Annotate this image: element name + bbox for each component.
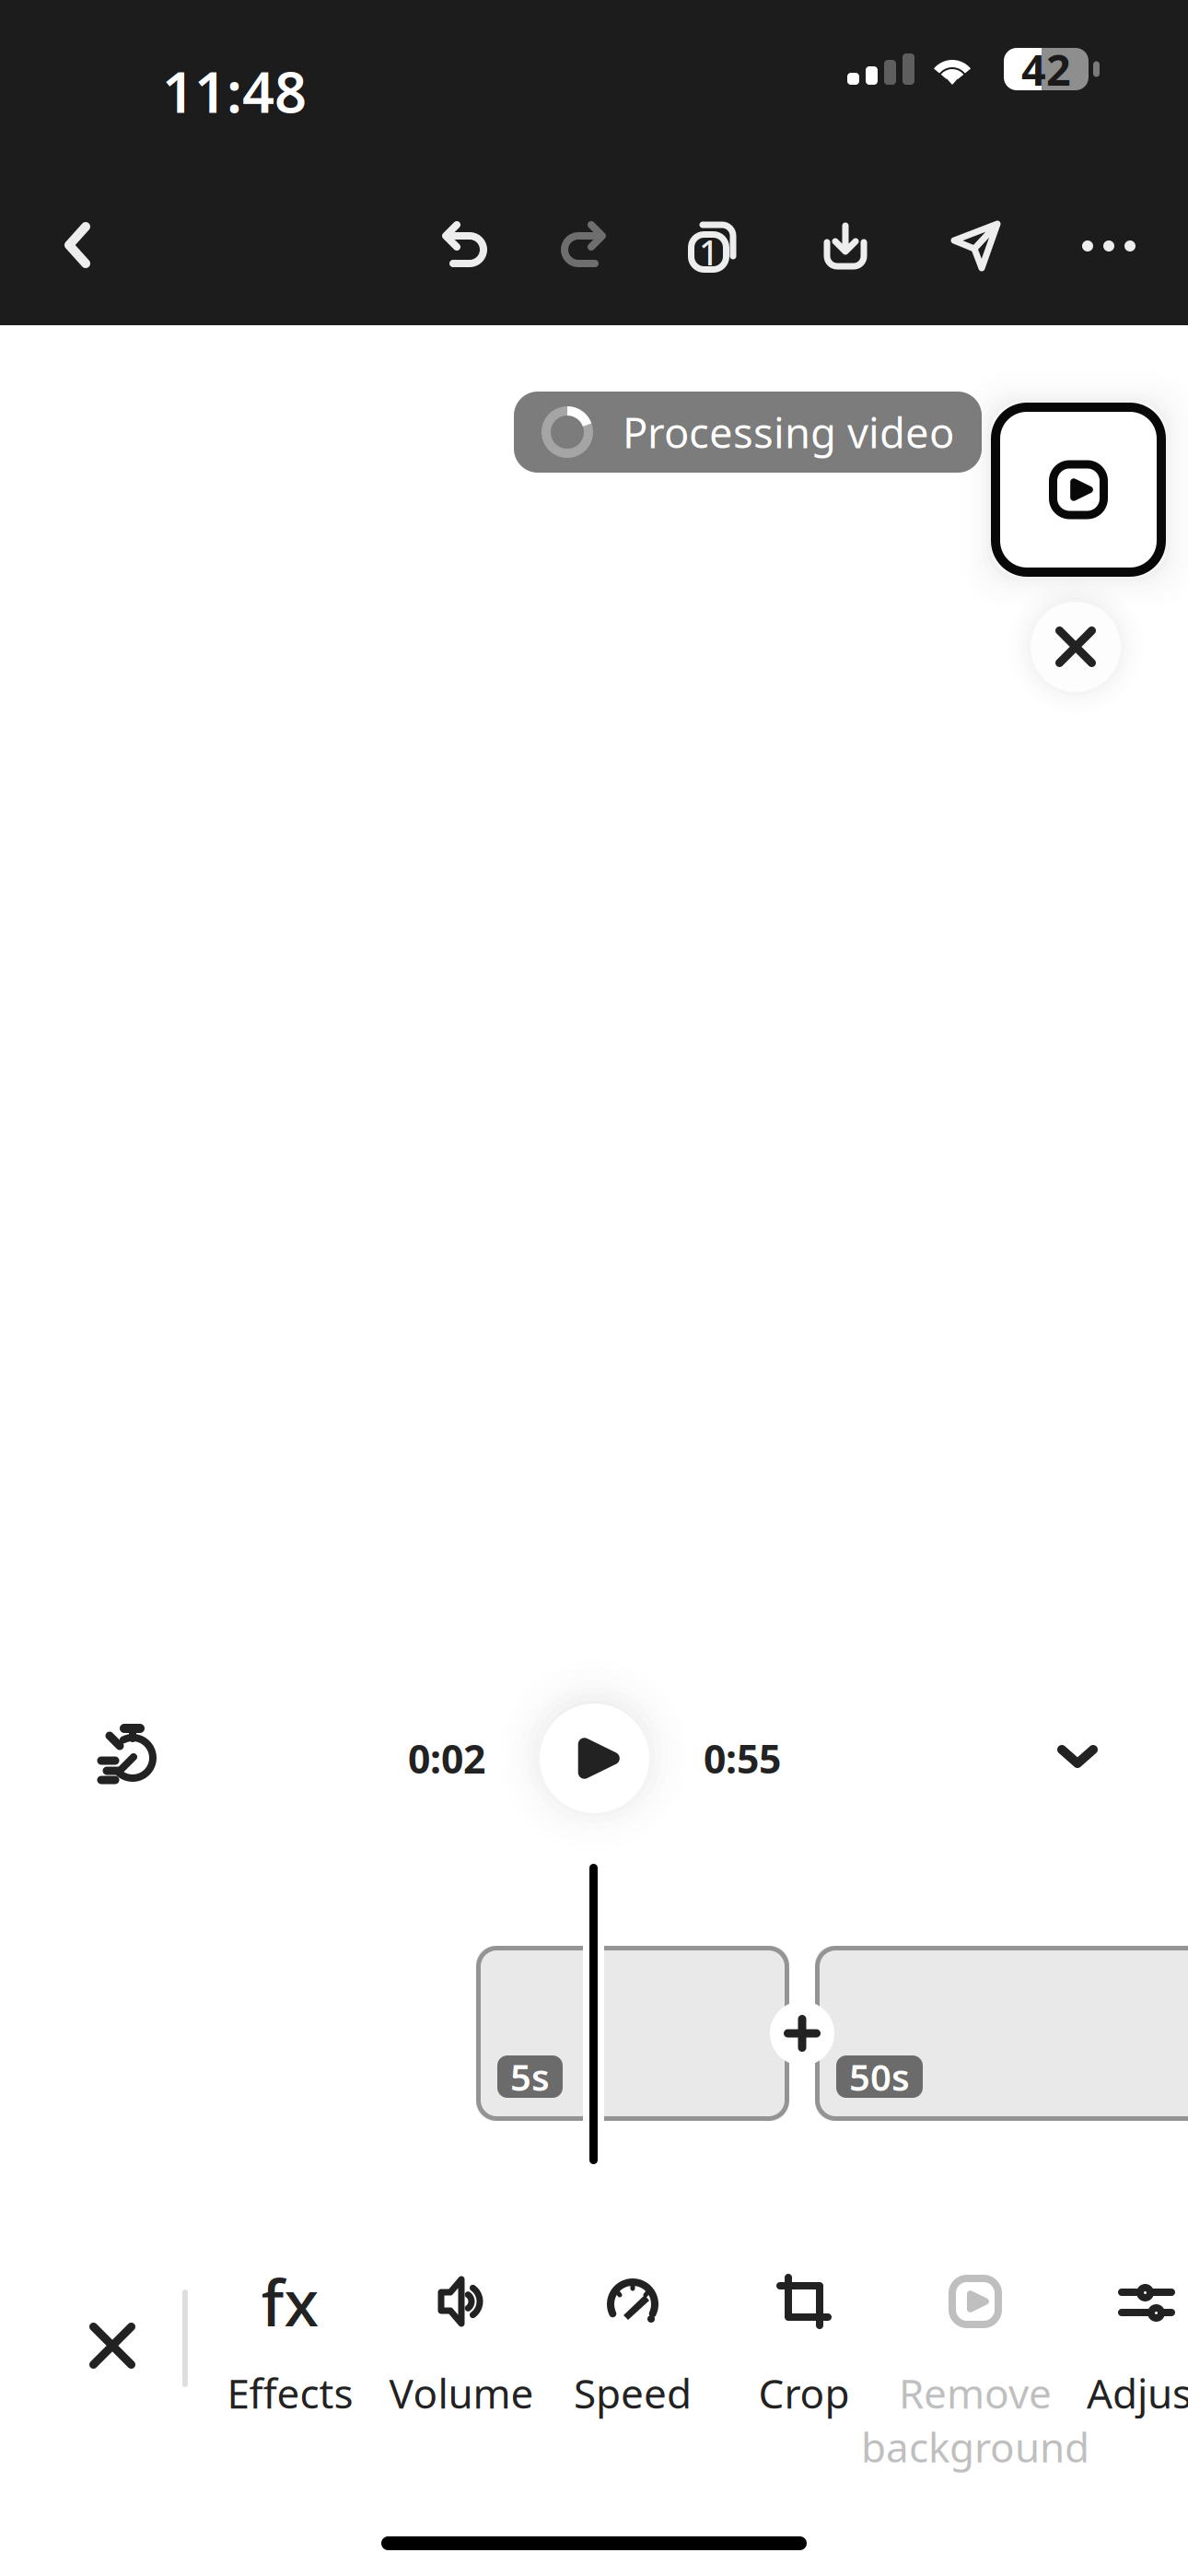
button[interactable]: More <box>1059 196 1159 296</box>
staticText: fx <box>261 2259 319 2344</box>
staticText: Adjust <box>1087 2366 1188 2420</box>
staticText: 1 <box>699 229 718 275</box>
staticText: Crop <box>758 2366 850 2420</box>
button[interactable]: Back <box>28 194 129 296</box>
button[interactable]: Adjust <box>1061 2272 1188 2465</box>
button[interactable]: Pages <box>662 196 762 296</box>
button[interactable]: Play <box>540 1704 649 1813</box>
staticText: 42 <box>1021 41 1071 98</box>
staticText: 0:02 <box>408 1732 485 1784</box>
staticText: 5s <box>510 2052 550 2101</box>
button[interactable]: Share <box>926 196 1026 296</box>
button[interactable]: Video clip <box>991 403 1166 577</box>
staticText: Effects <box>227 2366 353 2420</box>
button[interactable]: Download <box>796 196 895 296</box>
button[interactable]: Close <box>43 2277 181 2415</box>
button[interactable]: fx <box>204 2272 376 2465</box>
button[interactable]: Volume <box>376 2272 547 2465</box>
button[interactable]: Redo <box>532 195 632 295</box>
staticText: 0:55 <box>704 1732 781 1784</box>
button[interactable]: Remove <box>890 2272 1061 2465</box>
staticText: Processing video <box>623 404 954 460</box>
button[interactable]: Undo <box>416 195 516 295</box>
staticText: Speed <box>574 2366 692 2420</box>
staticText: background <box>861 2420 1089 2474</box>
staticText: 11:48 <box>162 53 307 128</box>
button[interactable]: Collapse <box>1027 1705 1128 1807</box>
button[interactable]: Crop <box>718 2272 890 2465</box>
staticText: Remove <box>899 2366 1052 2420</box>
button[interactable]: Speed <box>71 1698 181 1809</box>
button[interactable]: Add clip <box>770 2001 834 2066</box>
staticText: Volume <box>389 2366 534 2420</box>
button[interactable]: Speed <box>547 2272 718 2465</box>
staticText: 50s <box>849 2052 910 2101</box>
button[interactable]: Remove clip <box>1031 602 1121 692</box>
